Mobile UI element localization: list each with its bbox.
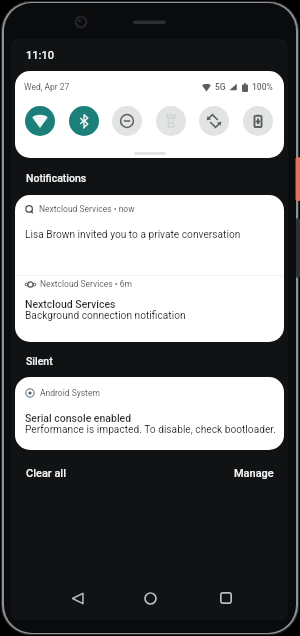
button[interactable]: Clear all	[26, 467, 66, 480]
staticText: Performance is impacted. To disable, che…	[25, 424, 276, 436]
staticText: Lisa Brown invited you to a private conv…	[25, 229, 241, 241]
button[interactable]: Auto-rotate	[199, 106, 229, 136]
button[interactable]: Flashlight	[156, 106, 186, 136]
button[interactable]: Bluetooth	[69, 106, 99, 136]
staticText: Silent	[26, 355, 53, 367]
staticText: 100%	[252, 82, 273, 92]
staticText: Notifications	[26, 172, 87, 184]
button[interactable]: Battery saver	[243, 106, 273, 136]
staticText: Wed, Apr 27	[24, 82, 70, 92]
staticText: 11:10	[26, 49, 54, 62]
button[interactable]: Do not disturb	[112, 106, 142, 136]
staticText: Nextcloud Services • now	[39, 204, 135, 214]
staticText: Clear all	[26, 467, 66, 480]
staticText: Android System	[40, 388, 100, 398]
button[interactable]: Nextcloud Services • now	[15, 195, 284, 276]
staticText: 5G	[215, 82, 226, 92]
button[interactable]: Android System	[15, 377, 284, 450]
button[interactable]: Nextcloud Services • 6m	[15, 276, 284, 342]
button[interactable]: Wi-Fi	[25, 106, 55, 136]
button[interactable]: Recent apps	[208, 580, 244, 616]
staticText: Background connection notification	[25, 310, 186, 322]
button[interactable]: Back	[59, 580, 95, 616]
staticText: Nextcloud Services	[25, 298, 116, 310]
staticText: Nextcloud Services • 6m	[40, 279, 132, 289]
staticText: Serial console enabled	[25, 412, 132, 424]
button[interactable]: Home	[132, 580, 168, 616]
button[interactable]: Manage	[234, 467, 274, 480]
staticText: Manage	[234, 467, 274, 480]
